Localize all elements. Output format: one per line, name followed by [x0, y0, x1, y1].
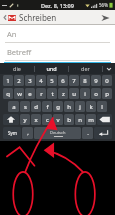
- staticText: die: [13, 65, 21, 72]
- staticText: p: [105, 90, 109, 98]
- button[interactable]: n: [75, 114, 85, 125]
- staticText: 3: [28, 77, 32, 85]
- button[interactable]: p: [102, 88, 112, 99]
- staticText: An: [7, 29, 17, 39]
- staticText: 2: [17, 77, 21, 85]
- staticText: und: [46, 65, 57, 72]
- staticText: 0: [105, 77, 109, 85]
- button[interactable]: .: [82, 127, 93, 139]
- button[interactable]: x: [31, 114, 41, 125]
- button[interactable]: q: [3, 88, 13, 99]
- staticText: c: [46, 116, 49, 124]
- button[interactable]: h: [64, 101, 74, 112]
- staticText: .: [87, 129, 89, 137]
- button[interactable]: a: [8, 101, 19, 112]
- button[interactable]: r: [36, 88, 46, 99]
- button[interactable]: 4: [36, 75, 46, 86]
- button[interactable]: b: [64, 114, 74, 125]
- button[interactable]: Sym: [3, 127, 21, 139]
- staticText: Schreiben: [19, 12, 57, 23]
- staticText: l: [101, 103, 103, 111]
- staticText: z: [62, 90, 65, 98]
- button[interactable]: 3: [25, 75, 35, 86]
- button[interactable]: o: [91, 88, 101, 99]
- staticText: s: [24, 103, 27, 111]
- staticText: o: [94, 90, 98, 98]
- staticText: n: [78, 116, 82, 124]
- staticText: x: [34, 116, 38, 124]
- staticText: 1: [6, 77, 10, 85]
- button[interactable]: 6: [58, 75, 68, 86]
- button[interactable]: Senden: [98, 11, 113, 25]
- button[interactable]: An: [0, 25, 115, 43]
- button[interactable]: 7: [69, 75, 79, 86]
- button[interactable]: k: [86, 101, 96, 112]
- button[interactable]: t: [47, 88, 57, 99]
- button[interactable]: der: [69, 63, 102, 74]
- staticText: a: [12, 103, 16, 111]
- button[interactable]: m: [86, 114, 96, 125]
- staticText: Betreff: [7, 47, 32, 57]
- staticText: u: [72, 90, 76, 98]
- staticText: r: [40, 90, 43, 98]
- button[interactable]: 2: [14, 75, 24, 86]
- button[interactable]: 0: [102, 75, 112, 86]
- button[interactable]: w: [14, 88, 24, 99]
- button[interactable]: Löschen: [97, 114, 112, 125]
- staticText: t: [51, 90, 54, 98]
- staticText: 9: [94, 77, 98, 85]
- button[interactable]: Eingabe: [94, 127, 112, 139]
- staticText: m: [88, 116, 94, 124]
- staticText: 5: [50, 77, 54, 85]
- button[interactable]: y: [20, 114, 30, 125]
- staticText: 7: [72, 77, 76, 85]
- button[interactable]: e: [25, 88, 35, 99]
- button[interactable]: Mehr Vorschläge: [103, 63, 115, 74]
- button[interactable]: j: [75, 101, 85, 112]
- button[interactable]: die: [0, 63, 34, 74]
- staticText: e: [28, 90, 32, 98]
- button[interactable]: 5: [47, 75, 57, 86]
- button[interactable]: Betreff: [0, 43, 115, 61]
- staticText: 4: [39, 77, 43, 85]
- button[interactable]: Zurück: [2, 12, 17, 23]
- button[interactable]: v: [53, 114, 63, 125]
- button[interactable]: 8: [80, 75, 90, 86]
- staticText: j: [79, 103, 81, 111]
- button[interactable]: f: [42, 101, 52, 112]
- staticText: f: [46, 103, 49, 111]
- button[interactable]: g: [53, 101, 63, 112]
- staticText: w: [17, 90, 22, 98]
- button[interactable]: l: [97, 101, 107, 112]
- staticText: der: [81, 65, 90, 72]
- staticText: b: [67, 116, 71, 124]
- staticText: 56%: [99, 2, 108, 8]
- staticText: q: [6, 90, 10, 98]
- button[interactable]: i: [80, 88, 90, 99]
- button[interactable]: c: [42, 114, 52, 125]
- staticText: g: [56, 103, 60, 111]
- staticText: 8: [83, 77, 87, 85]
- button[interactable]: Deutsch: [34, 127, 81, 139]
- button[interactable]: 9: [91, 75, 101, 86]
- staticText: k: [89, 103, 93, 111]
- staticText: h: [67, 103, 71, 111]
- staticText: i: [84, 90, 86, 98]
- staticText: 6: [61, 77, 65, 85]
- button[interactable]: Umschalt: [3, 114, 19, 125]
- button[interactable]: s: [20, 101, 30, 112]
- staticText: ,: [27, 129, 29, 137]
- staticText: Dez. 8, 13:09: [41, 2, 74, 9]
- button[interactable]: 1: [3, 75, 13, 86]
- staticText: d: [34, 103, 38, 111]
- staticText: Deutsch: [50, 130, 66, 135]
- staticText: v: [56, 116, 60, 124]
- button[interactable]: ,: [22, 127, 33, 139]
- button[interactable]: d: [31, 101, 41, 112]
- button[interactable]: u: [69, 88, 79, 99]
- button[interactable]: z: [58, 88, 68, 99]
- staticText: y: [23, 116, 27, 124]
- button[interactable]: und: [35, 63, 68, 74]
- staticText: Sym: [8, 130, 17, 136]
